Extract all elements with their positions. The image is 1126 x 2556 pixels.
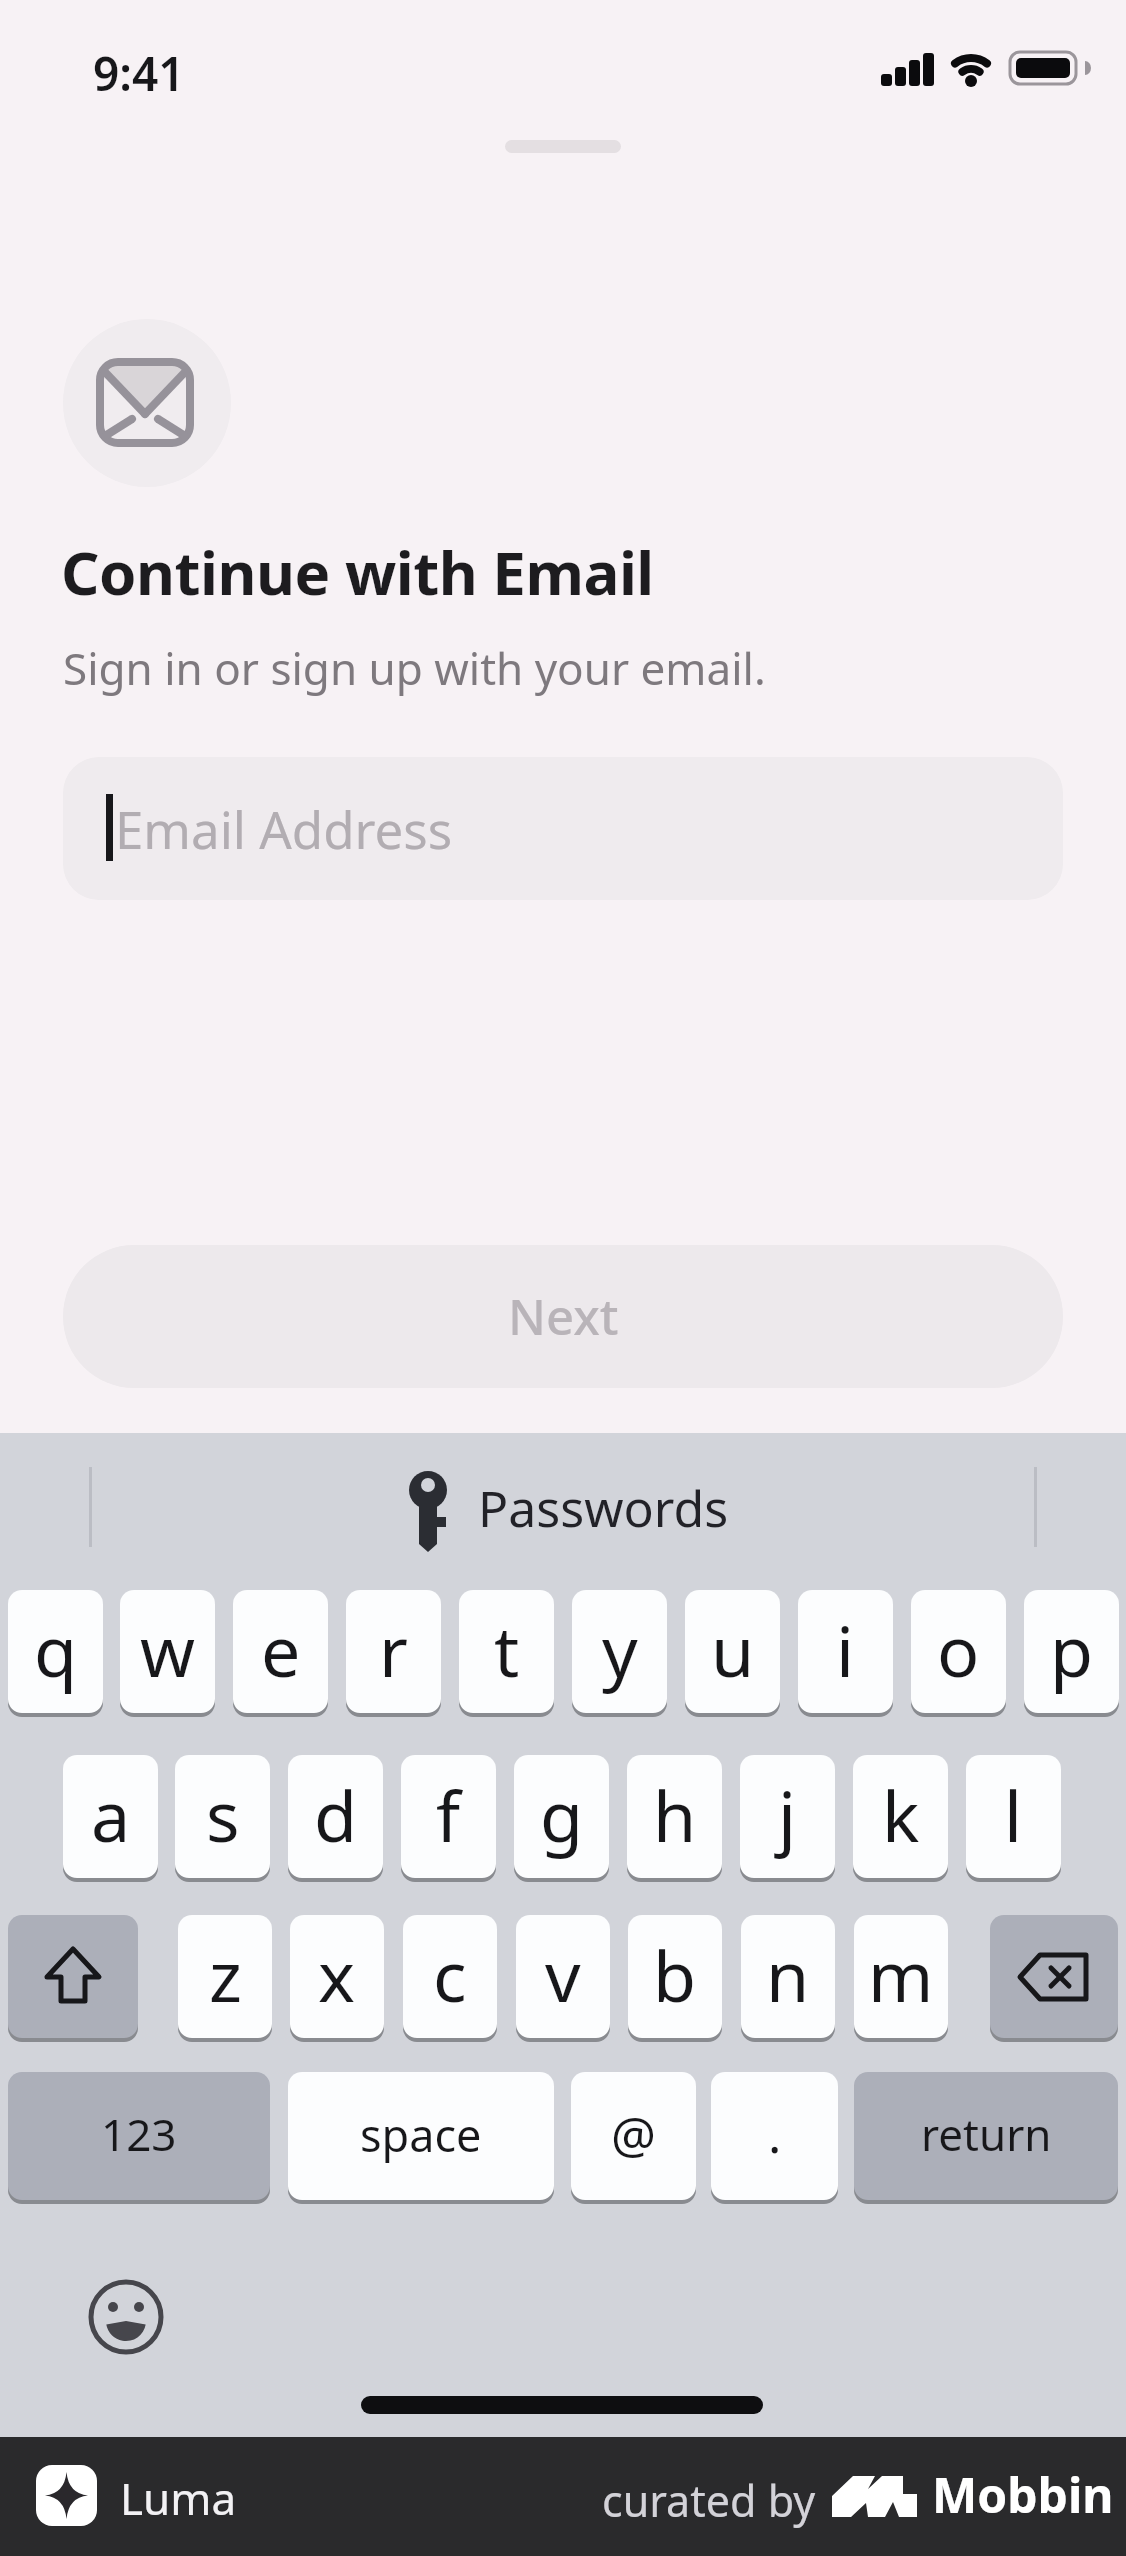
button[interactable]: space bbox=[288, 2072, 554, 2200]
staticText: p bbox=[1050, 1602, 1094, 1697]
staticText: q bbox=[34, 1602, 78, 1697]
staticText: a bbox=[91, 1767, 131, 1862]
button[interactable] bbox=[36, 2465, 97, 2526]
staticText: i bbox=[836, 1602, 855, 1697]
button[interactable]: . bbox=[711, 2072, 838, 2200]
staticText: f bbox=[436, 1767, 461, 1862]
staticText: Passwords bbox=[478, 1474, 729, 1542]
staticText: . bbox=[768, 2100, 782, 2168]
button[interactable]: t bbox=[459, 1590, 554, 1713]
button[interactable]: p bbox=[1024, 1590, 1119, 1713]
staticText: v bbox=[545, 1927, 581, 2022]
button[interactable]: a bbox=[63, 1755, 158, 1878]
staticText: 9:41 bbox=[93, 42, 185, 105]
staticText: 123 bbox=[101, 2104, 177, 2164]
staticText: o bbox=[937, 1602, 980, 1697]
staticText: Email Address bbox=[115, 794, 453, 863]
staticText: Luma bbox=[120, 2468, 237, 2528]
staticText: r bbox=[379, 1602, 408, 1697]
button[interactable]: e bbox=[233, 1590, 328, 1713]
staticText: c bbox=[433, 1927, 467, 2022]
button[interactable]: return bbox=[854, 2072, 1118, 2200]
button[interactable]: y bbox=[572, 1590, 667, 1713]
staticText: Sign in or sign up with your email. bbox=[63, 638, 766, 698]
button[interactable] bbox=[990, 1915, 1118, 2038]
staticText: s bbox=[206, 1767, 240, 1862]
button[interactable]: f bbox=[401, 1755, 496, 1878]
button[interactable]: o bbox=[911, 1590, 1006, 1713]
button[interactable]: h bbox=[627, 1755, 722, 1878]
staticText: y bbox=[602, 1602, 638, 1697]
button[interactable]: i bbox=[798, 1590, 893, 1713]
button[interactable]: Next bbox=[63, 1245, 1063, 1388]
staticText: m bbox=[868, 1927, 934, 2022]
staticText: @ bbox=[611, 2100, 656, 2168]
button[interactable]: q bbox=[8, 1590, 103, 1713]
staticText: g bbox=[540, 1767, 584, 1862]
staticText: Mobbin bbox=[932, 2462, 1114, 2527]
button[interactable]: c bbox=[403, 1915, 497, 2038]
button[interactable] bbox=[8, 1915, 138, 2038]
button[interactable]: x bbox=[290, 1915, 384, 2038]
staticText: t bbox=[494, 1602, 520, 1697]
staticText: Next bbox=[508, 1283, 619, 1350]
button[interactable] bbox=[380, 1455, 746, 1559]
button[interactable]: s bbox=[175, 1755, 270, 1878]
button[interactable]: d bbox=[288, 1755, 383, 1878]
staticText: x bbox=[318, 1927, 356, 2022]
staticText: d bbox=[314, 1767, 358, 1862]
staticText: z bbox=[209, 1927, 242, 2022]
staticText: n bbox=[766, 1927, 810, 2022]
button[interactable]: k bbox=[853, 1755, 948, 1878]
button[interactable]: r bbox=[346, 1590, 441, 1713]
button[interactable]: w bbox=[120, 1590, 215, 1713]
staticText: b bbox=[653, 1927, 697, 2022]
staticText: u bbox=[711, 1602, 755, 1697]
button[interactable]: b bbox=[628, 1915, 722, 2038]
staticText: curated by bbox=[602, 2471, 816, 2530]
button[interactable]: 123 bbox=[8, 2072, 270, 2200]
button[interactable]: Email Address bbox=[63, 757, 1063, 900]
button[interactable]: z bbox=[178, 1915, 272, 2038]
staticText: space bbox=[360, 2104, 482, 2165]
button[interactable]: j bbox=[740, 1755, 835, 1878]
button[interactable]: n bbox=[741, 1915, 835, 2038]
button[interactable]: @ bbox=[571, 2072, 696, 2200]
button[interactable]: l bbox=[966, 1755, 1061, 1878]
staticText: j bbox=[778, 1767, 797, 1862]
staticText: Continue with Email bbox=[61, 531, 654, 613]
button[interactable]: u bbox=[685, 1590, 780, 1713]
staticText: return bbox=[921, 2104, 1052, 2164]
staticText: l bbox=[1004, 1767, 1023, 1862]
button[interactable]: g bbox=[514, 1755, 609, 1878]
button[interactable]: m bbox=[854, 1915, 948, 2038]
staticText: h bbox=[653, 1767, 697, 1862]
staticText: k bbox=[882, 1767, 920, 1862]
button[interactable]: v bbox=[516, 1915, 610, 2038]
staticText: e bbox=[261, 1602, 301, 1697]
staticText: w bbox=[140, 1602, 196, 1697]
